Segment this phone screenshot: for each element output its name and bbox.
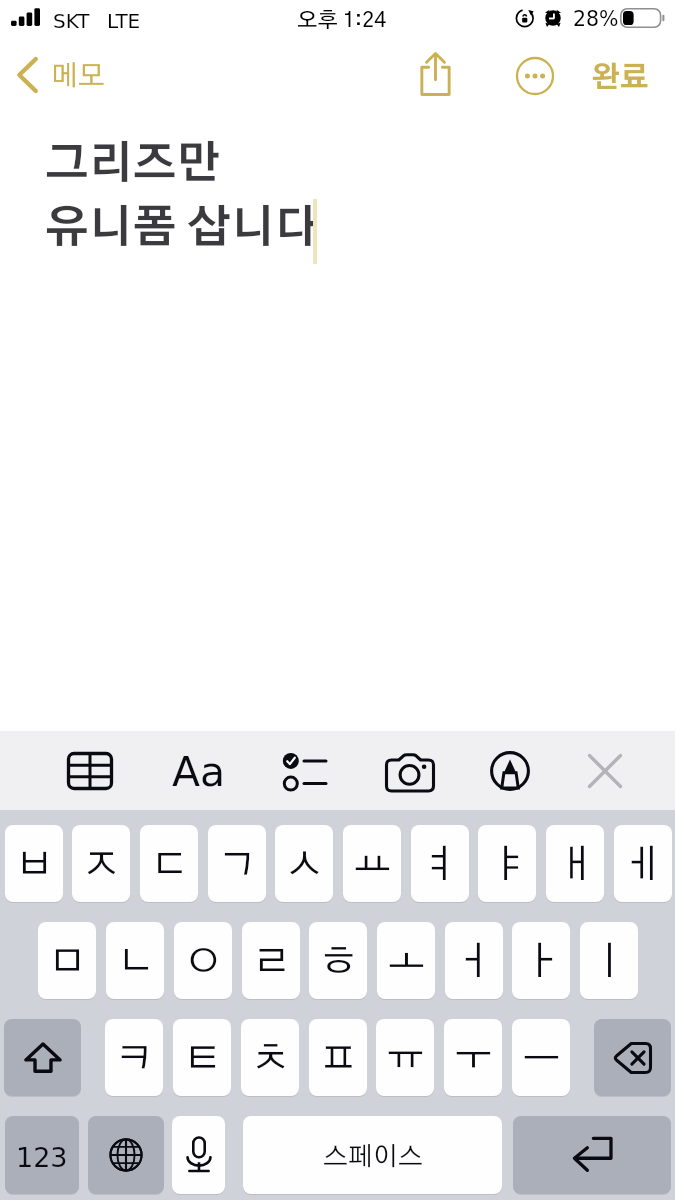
button[interactable]: ㅁ xyxy=(38,922,96,999)
button[interactable]: ㅕ xyxy=(411,825,469,902)
staticText: ㅌ xyxy=(183,1040,222,1079)
button[interactable]: ㄷ xyxy=(140,825,198,902)
button[interactable]: ㅡ xyxy=(512,1019,570,1096)
button[interactable]: 완료 xyxy=(585,53,655,103)
button[interactable]: ㅋ xyxy=(105,1019,163,1096)
staticText: ㅋ xyxy=(115,1040,154,1079)
button[interactable]: Close xyxy=(575,741,635,801)
staticText: 123 xyxy=(16,1142,68,1173)
button[interactable]: Share xyxy=(410,50,462,102)
button[interactable]: Table xyxy=(60,741,120,801)
staticText: 스페이스 xyxy=(323,1144,423,1170)
staticText: ㅅ xyxy=(285,846,324,885)
button[interactable]: ㅊ xyxy=(241,1019,299,1096)
staticText: ㅊ xyxy=(251,1040,290,1079)
button[interactable]: ㅔ xyxy=(614,825,672,902)
button[interactable]: ㅏ xyxy=(512,922,570,999)
staticText: ㅗ xyxy=(387,943,426,982)
staticText: ㅓ xyxy=(455,943,494,982)
button[interactable]: 스페이스 xyxy=(243,1116,502,1194)
staticText: ㅂ xyxy=(15,846,54,885)
button[interactable]: More options xyxy=(507,48,563,104)
button[interactable]: ㅍ xyxy=(309,1019,367,1096)
button[interactable]: ㄱ xyxy=(208,825,266,902)
button[interactable]: ㅈ xyxy=(72,825,130,902)
staticText: ㄱ xyxy=(218,846,257,885)
button[interactable]: Shift xyxy=(4,1019,81,1096)
staticText: 오후 1:24 xyxy=(297,10,387,31)
button[interactable]: ㄹ xyxy=(242,922,300,999)
staticText: ㄷ xyxy=(150,846,189,885)
button[interactable]: Markup xyxy=(480,741,540,801)
button[interactable]: 메모 xyxy=(6,48,114,102)
button[interactable]: ㅎ xyxy=(309,922,367,999)
staticText: ㅈ xyxy=(82,846,121,885)
button[interactable]: Camera xyxy=(380,741,440,801)
staticText: ㄹ xyxy=(252,943,291,982)
staticText: ㅕ xyxy=(421,846,460,885)
button[interactable]: ㄴ xyxy=(106,922,164,999)
staticText: ㅏ xyxy=(522,943,561,982)
button[interactable]: Checklist xyxy=(274,741,334,801)
staticText: 28% xyxy=(573,7,619,31)
staticText: 완료 xyxy=(591,64,649,93)
button[interactable]: Dictate xyxy=(172,1116,225,1194)
button[interactable]: ㅠ xyxy=(376,1019,434,1096)
staticText: LTE xyxy=(107,9,141,32)
staticText: ㅛ xyxy=(353,846,392,885)
button[interactable]: ㅑ xyxy=(478,825,536,902)
staticText: ㅜ xyxy=(454,1040,493,1079)
button[interactable]: ㅣ xyxy=(580,922,638,999)
staticText: ㄴ xyxy=(116,943,155,982)
button[interactable]: Backspace xyxy=(594,1019,671,1096)
staticText: ㅣ xyxy=(590,943,629,982)
staticText: ㅇ xyxy=(184,943,223,982)
button[interactable]: Return xyxy=(513,1116,671,1194)
button[interactable]: ㅅ xyxy=(275,825,333,902)
staticText: ㅍ xyxy=(319,1040,358,1079)
button[interactable]: ㅂ xyxy=(5,825,63,902)
staticText: 메모 xyxy=(51,63,105,91)
staticText: Aa xyxy=(172,748,226,796)
button[interactable]: ㅓ xyxy=(445,922,503,999)
staticText: 그리즈만 xyxy=(45,143,221,187)
staticText: ㅁ xyxy=(48,943,87,982)
staticText: ㅐ xyxy=(556,846,595,885)
button[interactable]: ㅗ xyxy=(377,922,435,999)
button[interactable]: ㅐ xyxy=(546,825,604,902)
staticText: ㅡ xyxy=(522,1040,561,1079)
button[interactable]: Next keyboard xyxy=(88,1116,164,1194)
button[interactable]: 123 xyxy=(5,1116,79,1194)
button[interactable]: Aa xyxy=(169,742,229,802)
staticText: SKT xyxy=(53,9,90,32)
staticText: ㅠ xyxy=(386,1040,425,1079)
button[interactable]: ㅇ xyxy=(174,922,232,999)
button[interactable]: ㅛ xyxy=(343,825,401,902)
staticText: 유니폼 삽니다 xyxy=(45,207,319,251)
staticText: ㅔ xyxy=(624,846,663,885)
button[interactable]: ㅜ xyxy=(444,1019,502,1096)
button[interactable]: ㅌ xyxy=(173,1019,231,1096)
staticText: ㅑ xyxy=(488,846,527,885)
staticText: ㅎ xyxy=(319,943,358,982)
